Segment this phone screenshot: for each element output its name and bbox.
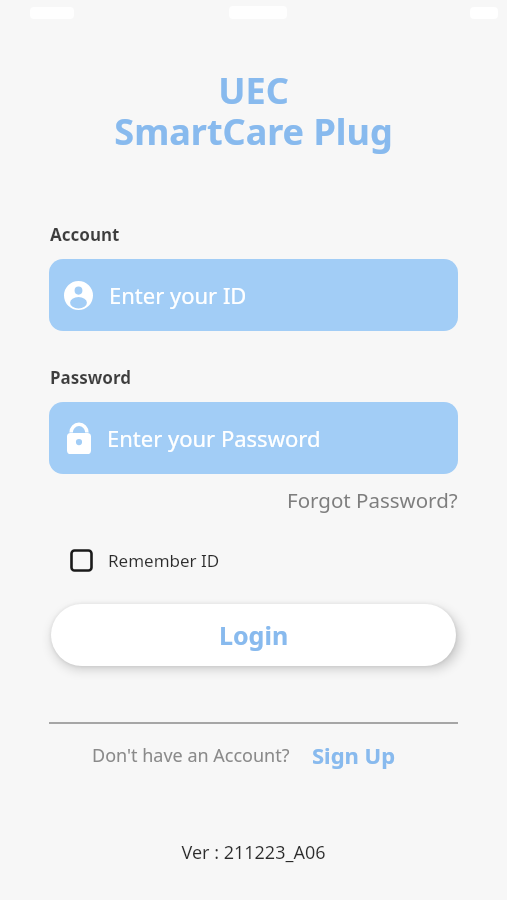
button[interactable]: Enter your Password xyxy=(49,402,458,474)
staticText: Login xyxy=(219,618,289,652)
staticText: Account xyxy=(50,223,120,246)
button[interactable]: Login xyxy=(51,604,456,666)
staticText: Ver : 211223_A06 xyxy=(0,840,507,865)
staticText: Password xyxy=(50,366,131,389)
button[interactable]: Remember ID xyxy=(70,549,220,572)
staticText: Enter your Password xyxy=(107,423,321,453)
staticText: UEC SmartCare Plug xyxy=(0,66,507,156)
staticText: Enter your ID xyxy=(109,280,247,310)
button[interactable]: Enter your ID xyxy=(49,259,458,331)
staticText: Don't have an Account? xyxy=(92,743,290,768)
button[interactable]: Sign Up xyxy=(312,740,396,770)
staticText: Remember ID xyxy=(108,549,220,572)
button[interactable]: Forgot Password? xyxy=(287,486,458,514)
